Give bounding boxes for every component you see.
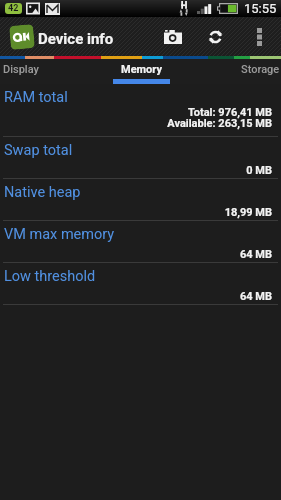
staticText: 42 [8,3,19,14]
staticText: Storage [241,63,280,76]
staticText: Low threshold [4,268,96,285]
button[interactable]: Native heap [0,179,281,221]
staticText: Available: 263,15 MB [0,117,272,130]
button[interactable]: Refresh [194,17,237,56]
button[interactable]: Memory [113,59,170,84]
button[interactable]: More options [237,17,281,56]
button[interactable]: Display [0,59,50,84]
button[interactable]: VM max memory [0,221,281,263]
button[interactable]: RAM total [0,84,281,137]
button[interactable]: Low threshold [0,263,281,305]
staticText: Memory [121,63,162,76]
staticText: Native heap [4,184,81,201]
staticText: VM max memory [4,226,115,243]
staticText: Device info [38,30,114,48]
staticText: 0 MB [0,164,272,177]
button[interactable]: Storage [231,59,281,84]
staticText: Swap total [4,142,73,159]
staticText: 18,99 MB [0,206,272,219]
staticText: 15:55 [244,1,277,16]
staticText: 64 MB [0,290,272,303]
button[interactable]: Swap total [0,137,281,179]
staticText: RAM total [4,89,68,106]
staticText: Display [3,63,39,76]
staticText: Total: 976,41 MB [0,106,272,119]
staticText: 64 MB [0,248,272,261]
button[interactable]: Screenshot [151,17,194,56]
